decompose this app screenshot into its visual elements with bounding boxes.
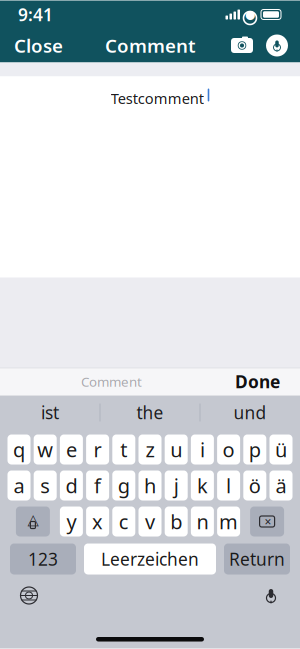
staticText: ä	[275, 472, 286, 499]
staticText: e	[66, 436, 77, 463]
button[interactable]: c	[112, 506, 135, 536]
staticText: △	[27, 511, 38, 528]
staticText: o	[223, 436, 235, 463]
staticText: m	[219, 508, 238, 535]
staticText: ●	[245, 8, 255, 21]
button[interactable]: ist	[0, 395, 99, 429]
button[interactable]: v	[138, 506, 161, 536]
button[interactable]: r	[86, 434, 109, 464]
staticText: ü	[275, 436, 287, 463]
staticText: r	[94, 436, 102, 463]
staticText: s	[40, 472, 50, 499]
button[interactable]: Leerzeichen	[84, 543, 216, 574]
button[interactable]: o	[217, 434, 240, 464]
staticText: i	[200, 436, 205, 463]
staticText: Close	[14, 33, 63, 58]
staticText: ö	[249, 472, 261, 499]
staticText: f	[94, 472, 101, 499]
button[interactable]: p	[243, 434, 266, 464]
button[interactable]: h	[138, 470, 161, 500]
staticText: w	[37, 436, 53, 463]
staticText: 9:41	[18, 3, 53, 26]
staticText: ist	[41, 401, 59, 424]
staticText: u	[170, 436, 182, 463]
staticText: x	[92, 508, 103, 535]
button[interactable]: y	[60, 506, 83, 536]
button[interactable]: l	[217, 470, 240, 500]
button[interactable]: ä	[269, 470, 292, 500]
button[interactable]: m	[217, 506, 240, 536]
button[interactable]: ö	[243, 470, 266, 500]
staticText: q	[13, 436, 25, 463]
button[interactable]: d	[60, 470, 83, 500]
button[interactable]: t	[112, 434, 135, 464]
staticText: c	[119, 508, 129, 535]
staticText: n	[196, 508, 208, 535]
button[interactable]: Delete	[250, 506, 284, 536]
button[interactable]: k	[191, 470, 214, 500]
button[interactable]: Camera	[224, 28, 260, 62]
staticText: j	[174, 472, 179, 499]
staticText: k	[197, 472, 208, 499]
button[interactable]: 123	[10, 543, 76, 574]
button[interactable]: und	[200, 395, 299, 429]
staticText: Return	[229, 547, 285, 570]
button[interactable]: Shift	[16, 506, 50, 536]
staticText: t	[120, 436, 127, 463]
button[interactable]: x	[86, 506, 109, 536]
staticText: Testcomment	[111, 88, 204, 108]
button[interactable]: the	[100, 395, 199, 429]
button[interactable]: ü	[269, 434, 292, 464]
staticText: p	[249, 436, 261, 463]
button[interactable]: f	[86, 470, 109, 500]
staticText: v	[145, 508, 155, 535]
staticText: the	[136, 401, 163, 424]
staticText: 123	[28, 547, 58, 570]
staticText: Comment	[105, 33, 196, 58]
button[interactable]: Dictation	[254, 582, 288, 608]
button[interactable]: b	[165, 506, 188, 536]
button[interactable]: q	[7, 434, 30, 464]
button[interactable]: e	[60, 434, 83, 464]
button[interactable]: i	[191, 434, 214, 464]
staticText: h	[144, 472, 156, 499]
staticText: l	[226, 472, 231, 499]
staticText: Leerzeichen	[101, 547, 199, 570]
staticText: und	[233, 401, 266, 424]
button[interactable]: a	[7, 470, 30, 500]
staticText: g	[118, 472, 130, 499]
staticText: b	[170, 508, 182, 535]
staticText: Comment	[81, 373, 142, 390]
button[interactable]: Return	[224, 543, 290, 574]
staticText: a	[13, 472, 24, 499]
button[interactable]: w	[34, 434, 57, 464]
button[interactable]: Dictate	[260, 28, 294, 62]
staticText: z	[145, 436, 154, 463]
button[interactable]: s	[34, 470, 57, 500]
button[interactable]: g	[112, 470, 135, 500]
button[interactable]: z	[138, 434, 161, 464]
button[interactable]: Next keyboard	[12, 582, 46, 608]
staticText: d	[65, 472, 77, 499]
staticText: y	[66, 508, 76, 535]
button[interactable]: j	[165, 470, 188, 500]
staticText: ×	[265, 513, 272, 529]
button[interactable]: u	[165, 434, 188, 464]
staticText: Done	[235, 370, 280, 393]
button[interactable]: Done	[223, 367, 292, 395]
button[interactable]: Close	[0, 28, 77, 62]
button[interactable]: n	[191, 506, 214, 536]
